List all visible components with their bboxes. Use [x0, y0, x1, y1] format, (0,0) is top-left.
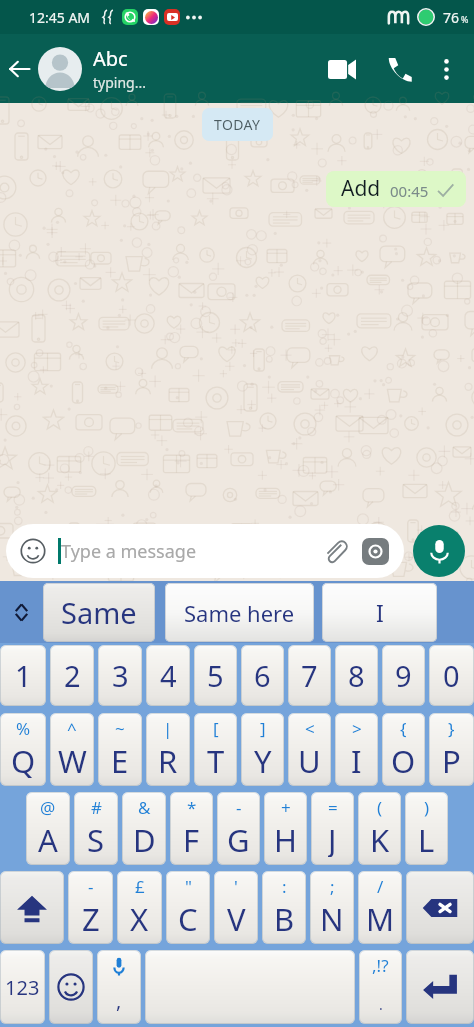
button[interactable]: [145, 950, 355, 1024]
staticText: L: [418, 819, 435, 857]
staticText: M: [366, 898, 395, 936]
staticText: &: [138, 796, 151, 819]
button[interactable]: 7: [288, 645, 331, 706]
staticText: O: [391, 740, 416, 778]
button[interactable]: Abc: [38, 45, 313, 92]
staticText: Z: [82, 898, 100, 936]
button[interactable]: ): [405, 792, 448, 865]
button[interactable]: 8: [335, 645, 378, 706]
button[interactable]: Voice message: [413, 525, 465, 577]
staticText: 3: [112, 656, 129, 695]
button[interactable]: ": [166, 871, 210, 944]
button[interactable]: Camera: [362, 538, 389, 565]
button[interactable]: 2: [50, 645, 94, 706]
button[interactable]: {: [382, 713, 425, 786]
staticText: 1: [15, 656, 32, 695]
button[interactable]: &: [122, 792, 166, 865]
staticText: ^: [67, 717, 77, 740]
staticText: H: [274, 819, 297, 857]
staticText: C: [178, 898, 198, 936]
button[interactable]: 123: [0, 950, 45, 1024]
staticText: G: [227, 819, 250, 857]
staticText: Same: [61, 593, 137, 632]
button[interactable]: ;: [310, 871, 354, 944]
button[interactable]: /: [358, 871, 402, 944]
button[interactable]: 6: [241, 645, 284, 706]
staticText: B: [274, 898, 295, 936]
button[interactable]: More options: [427, 45, 465, 93]
button[interactable]: ': [214, 871, 258, 944]
button[interactable]: |: [146, 713, 190, 786]
staticText: |: [163, 717, 173, 740]
button[interactable]: Video call: [313, 45, 371, 93]
button[interactable]: 3: [98, 645, 142, 706]
button[interactable]: 1: [0, 645, 46, 706]
staticText: E: [111, 740, 129, 778]
staticText: >: [352, 717, 362, 740]
button[interactable]: #: [74, 792, 118, 865]
button[interactable]: 4: [146, 645, 190, 706]
staticText: F: [183, 819, 200, 857]
button[interactable]: Same: [43, 583, 155, 642]
button[interactable]: ~: [98, 713, 142, 786]
staticText: V: [227, 898, 246, 936]
button[interactable]: 0: [429, 645, 474, 706]
staticText: 7: [301, 656, 318, 695]
staticText: *: [187, 796, 197, 819]
staticText: -: [88, 875, 94, 898]
staticText: ]: [260, 717, 266, 740]
button[interactable]: :: [262, 871, 306, 944]
button[interactable]: +: [264, 792, 307, 865]
staticText: A: [38, 819, 58, 857]
button[interactable]: I: [322, 583, 437, 642]
staticText: 4: [160, 656, 177, 695]
button[interactable]: (: [358, 792, 401, 865]
button[interactable]: [: [194, 713, 237, 786]
button[interactable]: Shift: [0, 871, 64, 944]
button[interactable]: 5: [194, 645, 237, 706]
staticText: TODAY: [214, 115, 261, 134]
button[interactable]: Attach: [322, 538, 348, 564]
button[interactable]: ^: [50, 713, 94, 786]
button[interactable]: Expand suggestions: [0, 581, 43, 643]
button[interactable]: Emoji: [49, 950, 93, 1024]
button[interactable]: -: [217, 792, 260, 865]
button[interactable]: Same here: [165, 583, 314, 642]
staticText: X: [130, 898, 149, 936]
staticText: 2: [64, 656, 81, 695]
button[interactable]: -: [68, 871, 113, 944]
button[interactable]: @: [26, 792, 70, 865]
button[interactable]: TODAY: [202, 108, 273, 141]
staticText: 76: [443, 8, 460, 27]
button[interactable]: =: [311, 792, 354, 865]
staticText: £: [135, 875, 145, 898]
staticText: Y: [254, 740, 272, 778]
button[interactable]: Voice input: [97, 950, 141, 1024]
button[interactable]: Enter: [406, 950, 474, 1024]
staticText: Type a message: [61, 539, 322, 564]
staticText: [: [213, 717, 219, 740]
button[interactable]: Call: [371, 45, 427, 93]
button[interactable]: ]: [241, 713, 284, 786]
button[interactable]: <: [288, 713, 331, 786]
staticText: ": [185, 875, 192, 898]
button[interactable]: ,!?: [359, 950, 402, 1024]
button[interactable]: £: [117, 871, 162, 944]
staticText: +: [281, 796, 291, 819]
staticText: @: [40, 796, 56, 819]
staticText: 9: [395, 656, 412, 695]
button[interactable]: *: [170, 792, 213, 865]
button[interactable]: Back: [2, 52, 36, 86]
staticText: Add: [341, 174, 381, 203]
staticText: I: [351, 740, 362, 778]
button[interactable]: >: [335, 713, 378, 786]
button[interactable]: Backspace: [406, 871, 474, 944]
button[interactable]: Type a message: [6, 524, 404, 578]
button[interactable]: Add: [326, 171, 466, 207]
button[interactable]: }: [429, 713, 474, 786]
staticText: W: [58, 740, 87, 778]
button[interactable]: 9: [382, 645, 425, 706]
button[interactable]: %: [0, 713, 46, 786]
staticText: }: [448, 717, 455, 740]
staticText: {: [400, 717, 407, 740]
